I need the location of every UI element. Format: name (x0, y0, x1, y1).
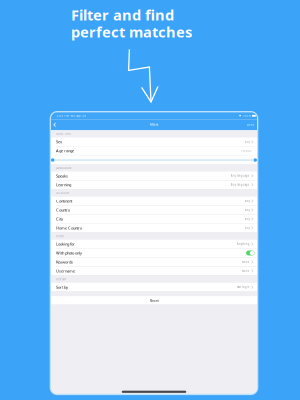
staticText: Done (247, 123, 255, 126)
staticText: Any language (231, 183, 250, 186)
staticText: 4:49 PM Tue Apr 28 (56, 114, 86, 117)
staticText: With photo only (56, 250, 82, 256)
button[interactable]: Username (51, 267, 257, 275)
staticText: 18-60+ (241, 149, 252, 152)
staticText: Country (56, 207, 70, 213)
staticText: LANGUAGES (56, 166, 71, 170)
staticText: Age range (56, 148, 74, 153)
staticText: Any (245, 217, 250, 221)
button[interactable]: Country (51, 206, 257, 215)
button[interactable]: Speaks (51, 172, 257, 180)
button[interactable]: Reset (51, 296, 257, 305)
staticText: LOCATION (56, 191, 69, 195)
staticText: Speaks (56, 173, 68, 178)
button[interactable]: Learning (51, 180, 257, 189)
staticText: Filter and find (71, 5, 174, 24)
button[interactable]: Keywords (51, 258, 257, 266)
staticText: None (242, 260, 250, 264)
button[interactable]: Looking for (51, 240, 257, 249)
staticText: Filters (150, 123, 158, 126)
button[interactable]: City (51, 215, 257, 223)
staticText: Any (245, 208, 250, 212)
staticText: None (242, 269, 250, 273)
button[interactable]: Home Country (51, 224, 257, 232)
button[interactable]: With photo only (51, 249, 257, 258)
staticText: Sex (56, 139, 62, 144)
staticText: BASIC INFO (56, 132, 71, 136)
button[interactable]: Sort by (51, 283, 257, 292)
staticText: DISPLAY (56, 277, 67, 281)
button[interactable]: Done (246, 122, 256, 127)
staticText: perfect matches (71, 22, 192, 41)
button[interactable]: Back (51, 120, 58, 129)
staticText: Keywords (56, 259, 73, 265)
staticText: Username (56, 268, 75, 273)
button[interactable]: Age range (51, 146, 257, 155)
staticText: 100% (243, 114, 251, 117)
staticText: Sort by (56, 284, 68, 290)
staticText: Any (245, 140, 250, 143)
button[interactable]: Sex (51, 137, 257, 146)
staticText: Anything (237, 242, 250, 246)
staticText: Any (245, 199, 250, 203)
button[interactable]: Continent (51, 197, 257, 206)
staticText: Last login (237, 285, 250, 289)
staticText: Any language (231, 174, 250, 178)
staticText: Home Country (56, 225, 82, 230)
staticText: Looking for (56, 241, 75, 247)
staticText: OTHER (56, 234, 64, 238)
staticText: Learning (56, 182, 71, 187)
staticText: Reset (149, 298, 158, 303)
staticText: Continent (56, 198, 72, 204)
staticText: Any (245, 226, 250, 230)
staticText: City (56, 216, 63, 221)
